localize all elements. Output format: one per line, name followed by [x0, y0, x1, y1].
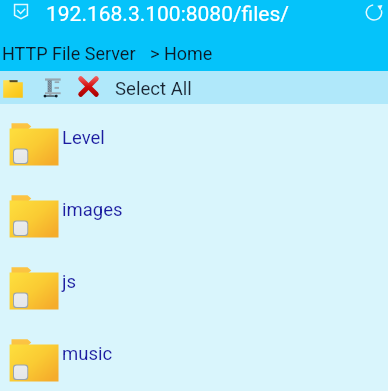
button[interactable]: Refresh [365, 4, 383, 21]
button[interactable]: Secure connection [14, 4, 28, 19]
staticText: images [62, 199, 123, 221]
button[interactable]: New folder [3, 80, 23, 98]
button[interactable]: Upload file [44, 77, 61, 97]
staticText: 192.168.3.100:8080/files/ [46, 2, 289, 27]
staticText: js [62, 271, 76, 293]
button[interactable]: HTTP File Server [2, 43, 136, 64]
button[interactable]: music [0, 320, 388, 391]
button[interactable]: Delete [78, 76, 99, 97]
staticText: Level [62, 127, 105, 149]
button[interactable]: > Home [150, 43, 213, 64]
button[interactable]: images [0, 176, 388, 248]
staticText: music [62, 343, 113, 365]
button[interactable]: Select All [115, 78, 192, 100]
button[interactable]: Level [0, 104, 388, 176]
button[interactable]: js [0, 248, 388, 320]
